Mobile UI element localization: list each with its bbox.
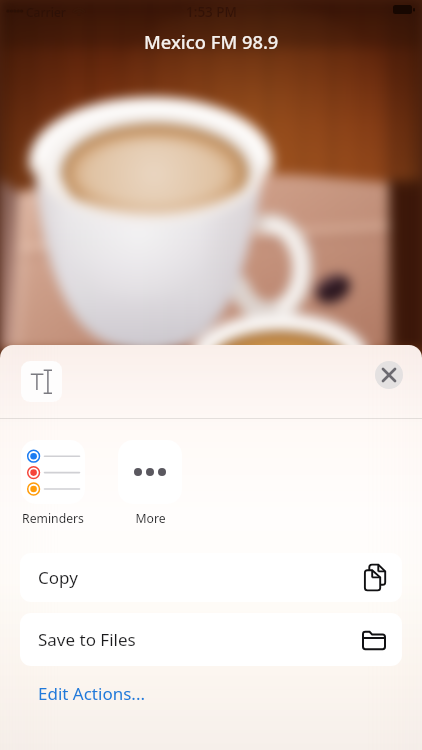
staticText: Copy bbox=[38, 566, 78, 589]
button[interactable]: More bbox=[118, 440, 182, 527]
button[interactable]: Copy bbox=[20, 553, 402, 602]
staticText: Save to Files bbox=[38, 628, 136, 651]
staticText: Edit Actions... bbox=[38, 682, 145, 705]
staticText: Reminders bbox=[22, 510, 84, 527]
staticText: Carrier bbox=[26, 4, 66, 20]
staticText: 1:53 PM bbox=[186, 3, 237, 21]
button[interactable]: Text document preview bbox=[21, 361, 62, 402]
button[interactable]: Close bbox=[375, 361, 403, 389]
button[interactable]: Save to Files bbox=[20, 613, 402, 666]
staticText: More bbox=[135, 510, 166, 527]
button[interactable]: Edit Actions... bbox=[38, 682, 145, 705]
button[interactable]: Reminders bbox=[21, 440, 85, 527]
staticText: Mexico FM 98.9 bbox=[144, 29, 279, 54]
